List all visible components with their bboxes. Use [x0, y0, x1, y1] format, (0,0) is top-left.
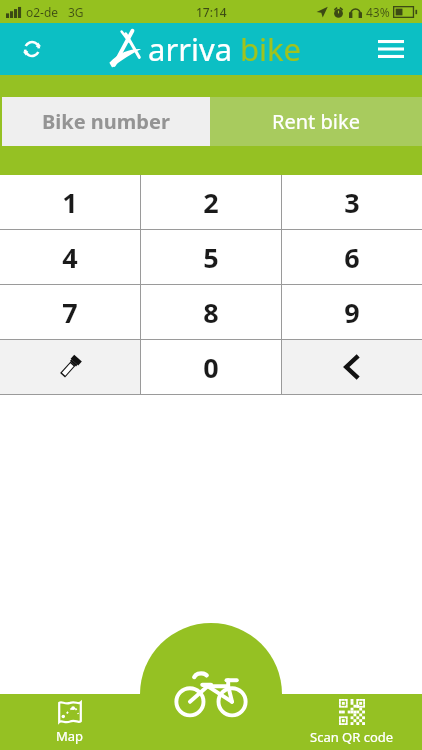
- button[interactable]: 5: [141, 230, 281, 284]
- button[interactable]: 0: [141, 340, 281, 394]
- staticText: 43%: [366, 4, 390, 20]
- staticText: Scan QR code: [310, 728, 394, 746]
- staticText: 2: [203, 184, 219, 221]
- button[interactable]: 4: [0, 230, 140, 284]
- button[interactable]: Menu: [370, 28, 412, 70]
- staticText: Rent bike: [272, 108, 360, 135]
- button[interactable]: Rent bike: [210, 97, 422, 146]
- staticText: o2-de: [26, 4, 59, 20]
- staticText: 3G: [68, 4, 84, 20]
- button[interactable]: Map: [0, 694, 140, 750]
- staticText: 17:14: [196, 4, 227, 20]
- button[interactable]: Backspace: [282, 340, 422, 394]
- button[interactable]: 8: [141, 285, 281, 339]
- button[interactable]: Refresh: [12, 29, 52, 69]
- staticText: 8: [203, 294, 219, 331]
- staticText: 4: [62, 239, 78, 276]
- button[interactable]: Flashlight: [0, 340, 140, 394]
- button[interactable]: 7: [0, 285, 140, 339]
- staticText: Bike number: [42, 108, 170, 135]
- button[interactable]: 9: [282, 285, 422, 339]
- button[interactable]: 3: [282, 175, 422, 229]
- staticText: 5: [203, 239, 219, 276]
- staticText: 0: [203, 349, 219, 386]
- button[interactable]: Scan QR code: [281, 694, 422, 750]
- staticText: Map: [56, 727, 84, 745]
- staticText: 3: [344, 184, 360, 221]
- staticText: 1: [62, 184, 78, 221]
- button[interactable]: 1: [0, 175, 140, 229]
- button[interactable]: Rent a bike: [140, 694, 281, 750]
- staticText: 9: [344, 294, 360, 331]
- staticText: 6: [344, 239, 360, 276]
- button[interactable]: 2: [141, 175, 281, 229]
- staticText: bike: [240, 28, 302, 70]
- staticText: arriva: [148, 28, 233, 70]
- button[interactable]: 6: [282, 230, 422, 284]
- staticText: 7: [62, 294, 78, 331]
- button[interactable]: Bike number: [2, 97, 210, 146]
